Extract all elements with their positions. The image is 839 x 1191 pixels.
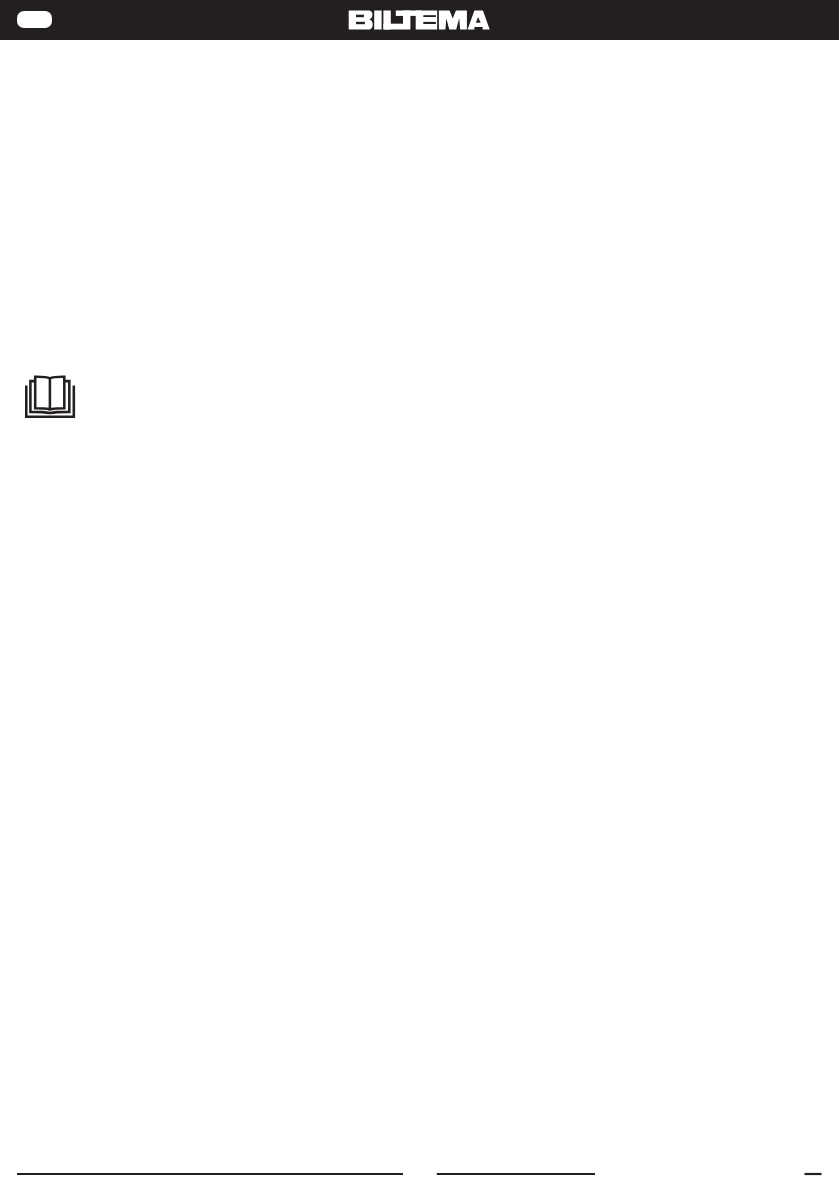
button[interactable]: BILTEMA	[0, 0, 839, 40]
button[interactable]: Page marker	[17, 11, 52, 28]
button[interactable]: Read the instruction manual	[21, 372, 78, 422]
